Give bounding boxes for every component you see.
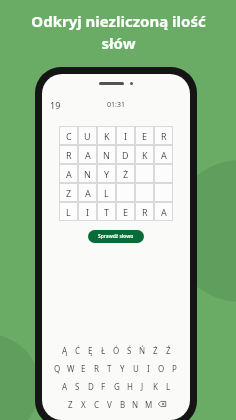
button[interactable]: X bbox=[77, 395, 90, 413]
staticText: C bbox=[94, 399, 100, 410]
button[interactable]: L bbox=[97, 183, 116, 202]
button[interactable]: A bbox=[58, 377, 71, 395]
button[interactable]: A bbox=[78, 183, 97, 202]
button[interactable] bbox=[154, 183, 173, 202]
button[interactable]: Sprawdź słowo bbox=[88, 230, 144, 243]
button[interactable]: T bbox=[103, 359, 116, 377]
button[interactable]: I bbox=[78, 202, 97, 221]
staticText: Ż bbox=[123, 168, 129, 180]
button[interactable]: D bbox=[116, 145, 135, 164]
staticText: V bbox=[107, 399, 112, 410]
button[interactable]: O bbox=[155, 359, 168, 377]
button[interactable] bbox=[135, 164, 154, 183]
button[interactable]: Y bbox=[97, 164, 116, 183]
staticText: D bbox=[122, 149, 129, 161]
staticText: H bbox=[127, 381, 133, 392]
button[interactable]: Ć bbox=[71, 341, 84, 359]
button[interactable]: U bbox=[129, 359, 142, 377]
button[interactable]: Backspace bbox=[155, 395, 168, 413]
staticText: A bbox=[66, 168, 72, 180]
button[interactable]: K bbox=[135, 145, 154, 164]
staticText: R bbox=[161, 130, 167, 142]
button[interactable]: U bbox=[78, 126, 97, 145]
button[interactable]: N bbox=[78, 164, 97, 183]
button[interactable]: I bbox=[116, 126, 135, 145]
button[interactable]: Z bbox=[64, 395, 77, 413]
button[interactable]: K bbox=[97, 126, 116, 145]
staticText: Ę bbox=[88, 345, 93, 356]
button[interactable]: J bbox=[136, 377, 149, 395]
button[interactable]: Ż bbox=[116, 164, 135, 183]
staticText: Y bbox=[120, 363, 125, 374]
button[interactable]: Ł bbox=[97, 341, 110, 359]
staticText: Z bbox=[66, 187, 72, 199]
staticText: Ć bbox=[75, 345, 81, 356]
staticText: W bbox=[67, 363, 75, 374]
staticText: I bbox=[124, 130, 128, 142]
staticText: Ó bbox=[113, 345, 120, 356]
button[interactable]: C bbox=[59, 126, 78, 145]
button[interactable]: Ę bbox=[84, 341, 97, 359]
button[interactable]: E bbox=[77, 359, 90, 377]
staticText: T bbox=[107, 363, 112, 374]
button[interactable] bbox=[154, 164, 173, 183]
button[interactable]: I bbox=[142, 359, 155, 377]
button[interactable]: A bbox=[154, 145, 173, 164]
staticText: U bbox=[84, 130, 91, 142]
staticText: O bbox=[158, 363, 165, 374]
staticText: Y bbox=[104, 168, 110, 180]
button[interactable]: R bbox=[135, 202, 154, 221]
button[interactable]: P bbox=[168, 359, 181, 377]
button[interactable]: Ż bbox=[149, 341, 162, 359]
button[interactable]: H bbox=[123, 377, 136, 395]
button[interactable]: T bbox=[97, 202, 116, 221]
staticText: D bbox=[88, 381, 94, 392]
button[interactable]: Y bbox=[116, 359, 129, 377]
button[interactable]: E bbox=[135, 126, 154, 145]
staticText: L bbox=[104, 187, 109, 199]
button[interactable]: R bbox=[59, 145, 78, 164]
button[interactable]: S bbox=[71, 377, 84, 395]
button[interactable]: F bbox=[97, 377, 110, 395]
button[interactable]: A bbox=[154, 202, 173, 221]
button[interactable]: R bbox=[90, 359, 103, 377]
button[interactable]: L bbox=[59, 202, 78, 221]
staticText: 19 bbox=[50, 99, 61, 111]
staticText: Q bbox=[54, 363, 61, 374]
button[interactable]: K bbox=[149, 377, 162, 395]
staticText: 01:31 bbox=[107, 100, 125, 110]
staticText: K bbox=[153, 381, 158, 392]
button[interactable]: Ó bbox=[110, 341, 123, 359]
button[interactable]: Ś bbox=[123, 341, 136, 359]
button[interactable]: B bbox=[116, 395, 129, 413]
button[interactable]: A bbox=[59, 164, 78, 183]
staticText: I bbox=[147, 363, 150, 374]
button[interactable]: N bbox=[129, 395, 142, 413]
button[interactable]: W bbox=[64, 359, 77, 377]
button[interactable]: G bbox=[110, 377, 123, 395]
staticText: Ś bbox=[127, 345, 132, 356]
button[interactable]: M bbox=[142, 395, 155, 413]
staticText: M bbox=[145, 399, 153, 410]
button[interactable]: E bbox=[116, 202, 135, 221]
staticText: Ń bbox=[139, 345, 146, 356]
button[interactable] bbox=[116, 183, 135, 202]
button[interactable]: C bbox=[90, 395, 103, 413]
button[interactable]: L bbox=[162, 377, 175, 395]
button[interactable] bbox=[135, 183, 154, 202]
button[interactable]: Q bbox=[51, 359, 64, 377]
button[interactable]: Z bbox=[59, 183, 78, 202]
staticText: Ł bbox=[101, 345, 106, 356]
button[interactable]: Ą bbox=[58, 341, 71, 359]
staticText: N bbox=[132, 399, 139, 410]
button[interactable]: Ń bbox=[136, 341, 149, 359]
staticText: A bbox=[62, 381, 68, 392]
staticText: S bbox=[75, 381, 80, 392]
button[interactable]: V bbox=[103, 395, 116, 413]
button[interactable]: A bbox=[78, 145, 97, 164]
button[interactable]: R bbox=[154, 126, 173, 145]
staticText: C bbox=[66, 130, 72, 142]
button[interactable]: N bbox=[97, 145, 116, 164]
button[interactable]: Ź bbox=[162, 341, 175, 359]
button[interactable]: D bbox=[84, 377, 97, 395]
